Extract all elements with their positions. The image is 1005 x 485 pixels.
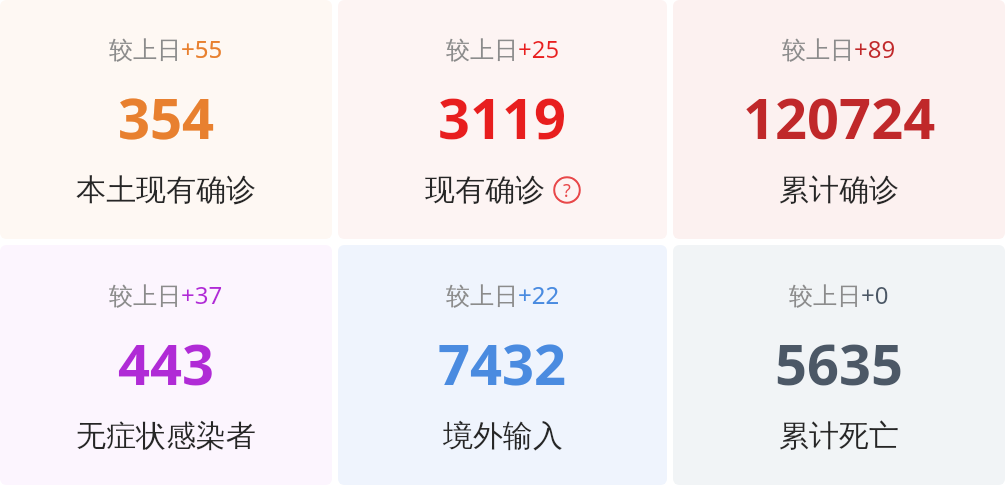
- staticText: 较上日+22: [446, 278, 560, 311]
- staticText: 443: [118, 325, 215, 401]
- button[interactable]: 较上日+55: [0, 0, 332, 239]
- staticText: 5635: [775, 325, 904, 401]
- staticText: 120724: [743, 79, 936, 155]
- staticText: 本土现有确诊: [76, 171, 256, 209]
- button[interactable]: Help: what is active cases: [553, 176, 581, 204]
- button[interactable]: 较上日+0: [673, 245, 1005, 485]
- staticText: 较上日+89: [782, 32, 896, 65]
- button[interactable]: 较上日+22: [338, 245, 667, 485]
- staticText: 7432: [438, 325, 567, 401]
- staticText: 较上日+0: [789, 278, 889, 311]
- staticText: 累计确诊: [779, 171, 899, 209]
- staticText: 较上日+25: [446, 32, 560, 65]
- staticText: 现有确诊: [425, 171, 545, 209]
- staticText: 3119: [438, 79, 567, 155]
- button[interactable]: 较上日+25: [338, 0, 667, 239]
- staticText: 354: [118, 79, 215, 155]
- button[interactable]: 较上日+37: [0, 245, 332, 485]
- staticText: 较上日+37: [109, 278, 223, 311]
- button[interactable]: 较上日+89: [673, 0, 1005, 239]
- staticText: 境外输入: [443, 417, 563, 455]
- staticText: ?: [563, 178, 571, 203]
- staticText: 无症状感染者: [76, 417, 256, 455]
- staticText: 累计死亡: [779, 417, 899, 455]
- staticText: 较上日+55: [109, 32, 223, 65]
